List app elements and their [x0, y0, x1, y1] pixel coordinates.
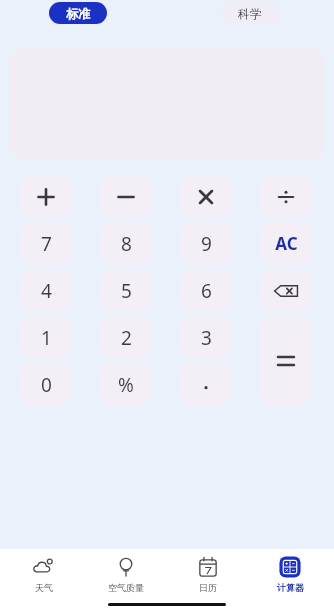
- button[interactable]: 4: [20, 269, 72, 312]
- button[interactable]: 6: [180, 269, 232, 312]
- staticText: 5: [121, 278, 132, 304]
- staticText: 1: [41, 325, 52, 351]
- button[interactable]: 标准: [49, 2, 107, 24]
- button[interactable]: 5: [100, 269, 152, 312]
- button[interactable]: 空气质量: [88, 555, 164, 593]
- staticText: 2: [121, 325, 132, 351]
- staticText: 天气: [35, 582, 53, 593]
- button[interactable]: 2: [100, 316, 152, 359]
- button[interactable]: AC: [260, 222, 312, 265]
- button[interactable]: Divide: [260, 175, 312, 218]
- staticText: 空气质量: [108, 582, 144, 593]
- button[interactable]: 3: [180, 316, 232, 359]
- staticText: %: [118, 372, 134, 398]
- staticText: 7: [41, 231, 52, 257]
- button[interactable]: 0: [20, 363, 72, 406]
- staticText: 4: [41, 278, 52, 304]
- staticText: 计算器: [277, 582, 304, 593]
- button[interactable]: Plus: [20, 175, 72, 218]
- staticText: 标准: [66, 6, 90, 21]
- button[interactable]: Decimal point: [180, 363, 232, 406]
- button[interactable]: 天气: [6, 555, 82, 593]
- staticText: AC: [275, 232, 298, 255]
- staticText: 3: [201, 325, 212, 351]
- button[interactable]: 9: [180, 222, 232, 265]
- button[interactable]: 计算器: [252, 555, 328, 593]
- staticText: 科学: [238, 6, 262, 21]
- staticText: 0: [41, 372, 52, 398]
- button[interactable]: Multiply: [180, 175, 232, 218]
- button[interactable]: Backspace: [260, 269, 312, 312]
- button[interactable]: 8: [100, 222, 152, 265]
- button[interactable]: 1: [20, 316, 72, 359]
- button[interactable]: 科学: [221, 2, 279, 24]
- staticText: 9: [201, 231, 212, 257]
- staticText: 日历: [199, 582, 217, 593]
- button[interactable]: 日历: [170, 555, 246, 593]
- button[interactable]: Minus: [100, 175, 152, 218]
- button[interactable]: %: [100, 363, 152, 406]
- staticText: 6: [201, 278, 212, 304]
- button[interactable]: 7: [20, 222, 72, 265]
- staticText: 8: [121, 231, 132, 257]
- button[interactable]: Equals: [260, 316, 312, 406]
